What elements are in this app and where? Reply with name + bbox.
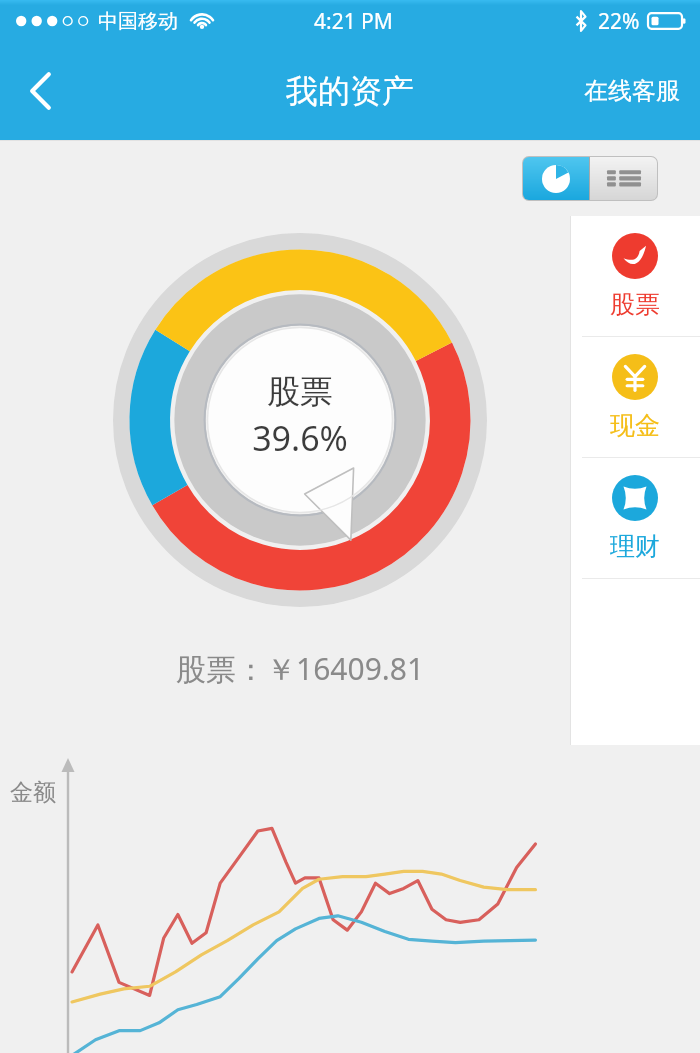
button[interactable]: 股票 (570, 216, 700, 336)
staticText: 股票 (610, 289, 660, 320)
staticText: 39.6% (252, 415, 348, 461)
button[interactable]: 现金 (570, 337, 700, 457)
button[interactable]: 在线客服 (578, 66, 686, 116)
staticText: 现金 (610, 410, 660, 441)
staticText: 22% (598, 7, 640, 36)
button[interactable]: Chart view (523, 157, 589, 200)
staticText: 在线客服 (584, 76, 680, 106)
staticText: 股票：￥16409.81 (176, 648, 425, 689)
staticText: 中国移动 (98, 9, 178, 34)
staticText: 4:21 PM (314, 7, 393, 36)
staticText: 我的资产 (286, 71, 414, 111)
staticText: 理财 (610, 531, 660, 562)
button[interactable]: Back (10, 60, 72, 122)
button[interactable]: 股票 (113, 233, 487, 607)
button[interactable]: 理财 (570, 458, 700, 578)
button[interactable]: List view (590, 157, 657, 200)
staticText: 金额 (10, 778, 56, 807)
staticText: 股票 (267, 371, 333, 413)
